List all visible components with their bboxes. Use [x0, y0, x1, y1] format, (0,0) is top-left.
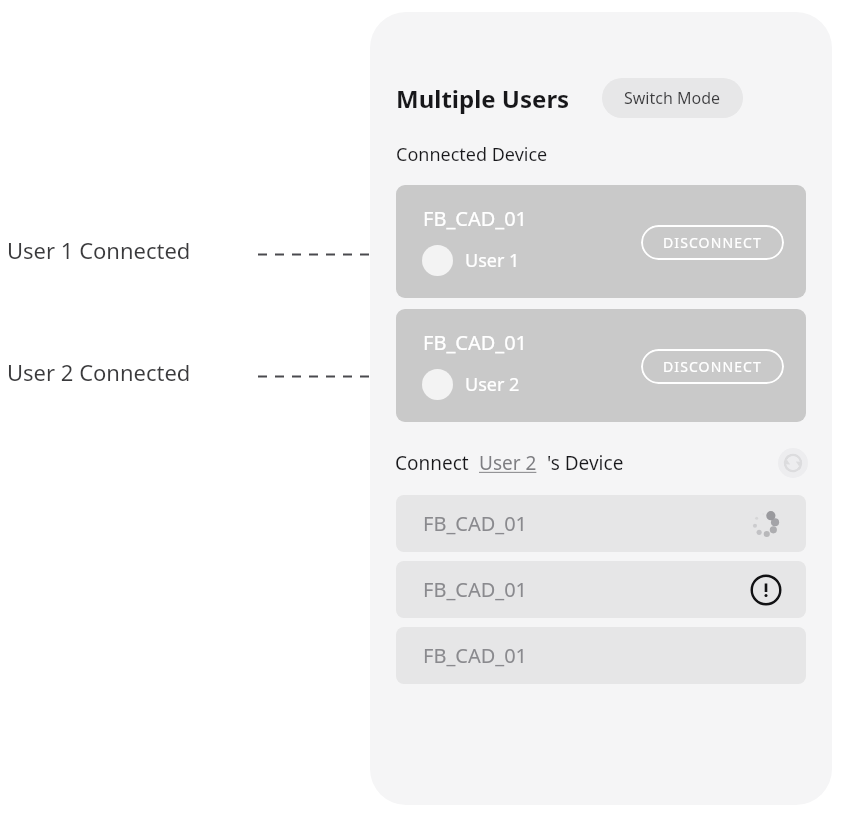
button[interactable]: DISCONNECT: [641, 225, 784, 260]
staticText: 's Device: [547, 450, 624, 476]
staticText: User 1 Connected: [7, 235, 191, 265]
button[interactable]: FB_CAD_01: [396, 185, 806, 298]
staticText: Connected Device: [396, 142, 548, 167]
staticText: User 2: [479, 450, 537, 476]
button[interactable]: FB_CAD_01: [396, 495, 806, 552]
button[interactable]: FB_CAD_01: [396, 561, 806, 618]
staticText: DISCONNECT: [663, 233, 762, 252]
staticText: Switch Mode: [624, 87, 721, 109]
button[interactable]: FB_CAD_01: [396, 309, 806, 422]
button[interactable]: Refresh: [776, 446, 810, 480]
staticText: User 1: [465, 248, 520, 273]
staticText: FB_CAD_01: [423, 205, 528, 232]
staticText: FB_CAD_01: [423, 642, 528, 669]
button[interactable]: FB_CAD_01: [396, 627, 806, 684]
staticText: FB_CAD_01: [423, 329, 528, 356]
staticText: Multiple Users: [396, 82, 570, 115]
staticText: User 2 Connected: [7, 357, 191, 387]
staticText: FB_CAD_01: [423, 510, 528, 537]
staticText: Connect: [395, 450, 469, 476]
button[interactable]: DISCONNECT: [641, 349, 784, 384]
staticText: User 2: [465, 372, 520, 397]
button[interactable]: User 2: [479, 450, 537, 476]
staticText: DISCONNECT: [663, 357, 762, 376]
button[interactable]: Switch Mode: [602, 78, 743, 118]
staticText: FB_CAD_01: [423, 576, 528, 603]
